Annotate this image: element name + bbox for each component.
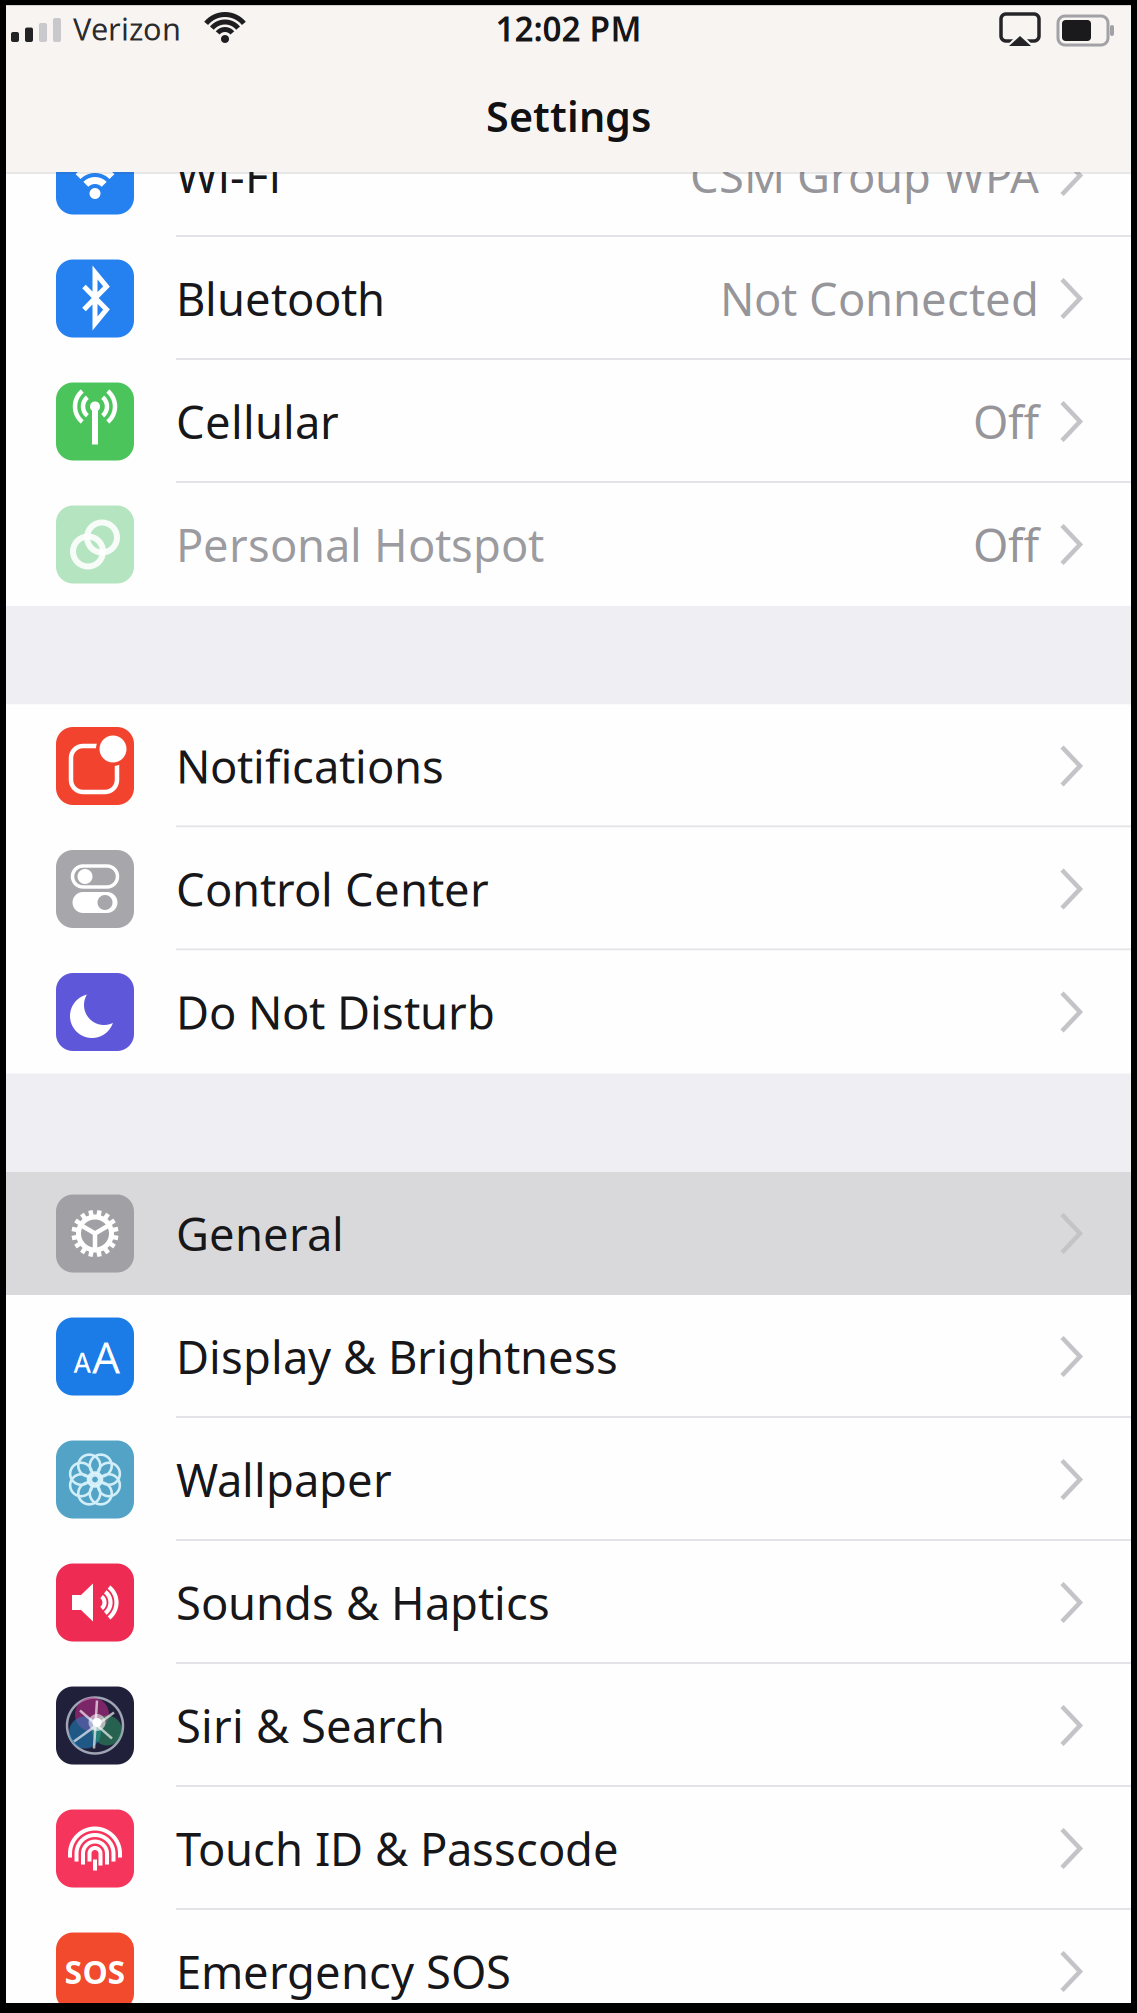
- staticText: CSM Group WPA: [690, 145, 1039, 206]
- button[interactable]: Notifications: [6, 704, 1131, 827]
- button[interactable]: Control Center: [6, 827, 1131, 950]
- button[interactable]: Do Not Disturb: [6, 950, 1131, 1073]
- staticText: Sounds & Haptics: [176, 1572, 550, 1633]
- staticText: Notifications: [176, 736, 444, 796]
- staticText: A: [73, 1345, 90, 1380]
- button[interactable]: Personal Hotspot: [6, 483, 1131, 606]
- staticText: Verizon: [73, 8, 181, 49]
- staticText: SOS: [64, 1950, 125, 1993]
- button[interactable]: Touch ID & Passcode: [6, 1787, 1131, 1910]
- staticText: A: [92, 1327, 120, 1386]
- staticText: Settings: [486, 89, 651, 143]
- staticText: Control Center: [176, 859, 489, 919]
- staticText: Do Not Disturb: [176, 982, 495, 1042]
- staticText: Off: [973, 514, 1039, 575]
- staticText: Off: [973, 391, 1039, 452]
- button[interactable]: SOS: [6, 1910, 1131, 2013]
- staticText: 12:02 PM: [495, 6, 641, 51]
- button[interactable]: Cellular: [6, 360, 1131, 483]
- staticText: Display & Brightness: [176, 1326, 618, 1387]
- staticText: Siri & Search: [176, 1695, 445, 1756]
- button[interactable]: Sounds & Haptics: [6, 1541, 1131, 1664]
- staticText: Wi-Fi: [176, 145, 281, 206]
- staticText: Wallpaper: [176, 1449, 392, 1510]
- staticText: Cellular: [176, 391, 339, 452]
- button[interactable]: Wi-Fi: [6, 114, 1131, 237]
- button[interactable]: General: [6, 1172, 1131, 1295]
- staticText: Emergency SOS: [176, 1941, 511, 2002]
- staticText: General: [176, 1203, 344, 1264]
- staticText: Personal Hotspot: [176, 514, 544, 575]
- staticText: Not Connected: [720, 268, 1039, 329]
- button[interactable]: A: [6, 1295, 1131, 1418]
- staticText: Touch ID & Passcode: [176, 1818, 619, 1879]
- button[interactable]: Wallpaper: [6, 1418, 1131, 1541]
- button[interactable]: Siri & Search: [6, 1664, 1131, 1787]
- staticText: Bluetooth: [176, 268, 385, 329]
- button[interactable]: Bluetooth: [6, 237, 1131, 360]
